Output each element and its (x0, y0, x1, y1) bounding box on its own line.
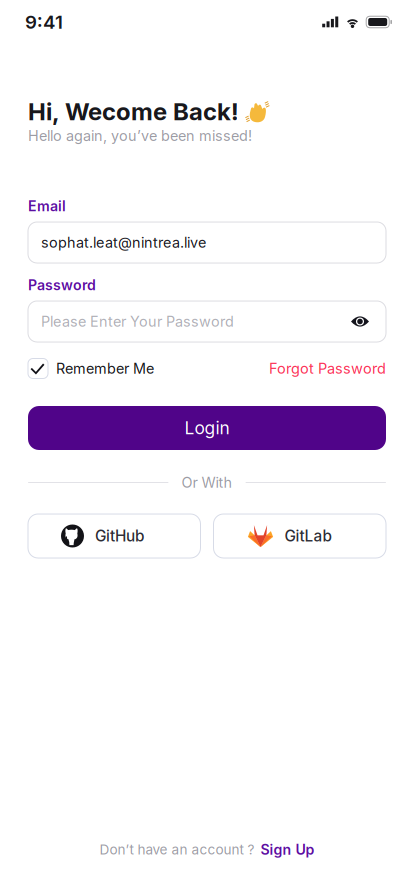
staticText: GitLab (284, 527, 331, 545)
button[interactable]: Login (28, 406, 386, 450)
staticText: Login (184, 417, 229, 438)
staticText: Hi, Wecome Back! (28, 97, 239, 126)
staticText: Please Enter Your Password (41, 313, 234, 330)
staticText: Password (28, 276, 96, 294)
staticText: Forgot Password (269, 360, 386, 377)
staticText: Sign Up (260, 841, 314, 858)
staticText: Hello again, you’ve been missed! (28, 127, 252, 144)
staticText: Email (28, 197, 66, 215)
button[interactable]: GitLab (213, 514, 386, 558)
button[interactable]: Forgot Password (269, 358, 386, 379)
button[interactable]: Remember Me (28, 358, 154, 379)
button[interactable]: Show password (351, 315, 369, 328)
button[interactable]: Sign Up (260, 841, 314, 858)
staticText: Or With (181, 474, 232, 491)
staticText: 9:41 (25, 11, 63, 33)
button[interactable]: GitHub (28, 514, 200, 558)
staticText: sophat.leat@nintrea.live (41, 234, 206, 251)
staticText: Don’t have an account ? (99, 841, 254, 858)
staticText: Remember Me (56, 360, 154, 377)
staticText: GitHub (95, 527, 144, 545)
